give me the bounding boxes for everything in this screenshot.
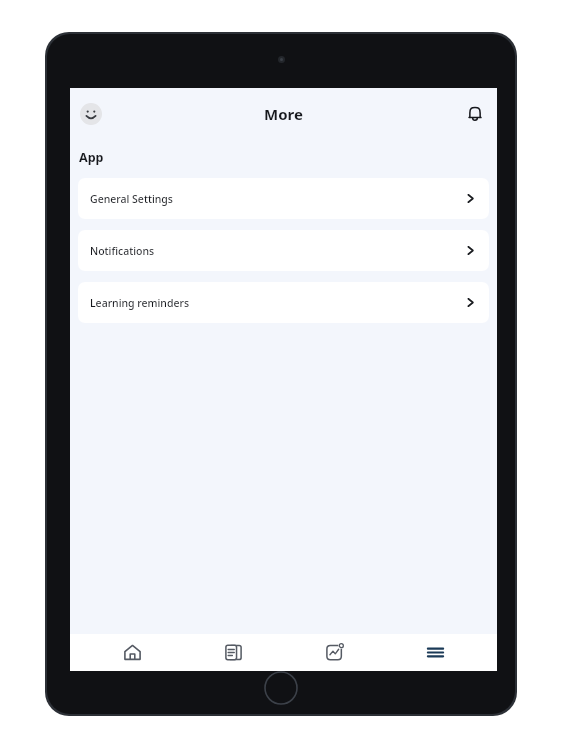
staticText: General Settings: [90, 192, 173, 206]
button[interactable]: More: [396, 634, 474, 671]
button[interactable]: Progress: [295, 634, 373, 671]
button[interactable]: Home: [93, 634, 171, 671]
button[interactable]: Courses: [194, 634, 272, 671]
staticText: App: [79, 149, 104, 166]
button[interactable]: Notifications: [459, 98, 491, 130]
button[interactable]: Learning reminders: [78, 282, 489, 323]
button[interactable]: Profile: [75, 98, 107, 130]
button[interactable]: Notifications: [78, 230, 489, 271]
staticText: Learning reminders: [90, 296, 190, 310]
staticText: More: [264, 104, 303, 124]
staticText: Notifications: [90, 244, 155, 258]
button[interactable]: General Settings: [78, 178, 489, 219]
